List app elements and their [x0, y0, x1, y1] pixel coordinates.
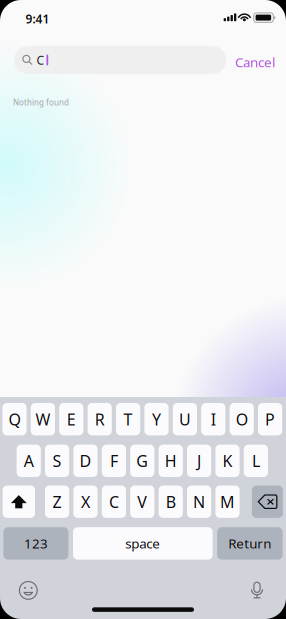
button[interactable]: I [201, 403, 225, 435]
button[interactable]: K [215, 445, 240, 477]
staticText: Nothing found [13, 97, 69, 108]
button[interactable]: C [102, 485, 126, 518]
button[interactable]: S [45, 445, 69, 477]
button[interactable]: Emoji [11, 575, 45, 605]
staticText: F [110, 450, 118, 471]
button[interactable]: Delete [252, 485, 283, 518]
button[interactable]: 123 [3, 527, 68, 560]
button[interactable]: O [230, 403, 254, 435]
button[interactable]: Z [45, 485, 69, 518]
staticText: Cancel [235, 53, 275, 71]
staticText: J [197, 450, 201, 471]
button[interactable]: J [187, 445, 211, 477]
staticText: T [124, 409, 133, 430]
staticText: O [236, 409, 248, 430]
button[interactable]: P [258, 403, 282, 435]
button[interactable]: U [173, 403, 197, 435]
staticText: C [36, 52, 44, 68]
button[interactable]: Q [2, 403, 27, 435]
button[interactable]: V [130, 485, 154, 518]
staticText: W [35, 409, 50, 430]
button[interactable]: R [88, 403, 112, 435]
staticText: V [137, 491, 147, 512]
button[interactable]: H [159, 445, 183, 477]
button[interactable]: L [244, 445, 268, 477]
staticText: X [81, 491, 90, 512]
button[interactable]: Cancel [233, 48, 277, 76]
staticText: Return [228, 534, 271, 552]
staticText: Y [152, 409, 161, 430]
button[interactable]: M [215, 485, 240, 518]
staticText: B [166, 491, 176, 512]
staticText: Z [53, 491, 62, 512]
staticText: 9:41 [25, 11, 49, 27]
button[interactable]: Y [144, 403, 169, 435]
staticText: K [222, 450, 232, 471]
button[interactable]: N [187, 485, 211, 518]
staticText: P [265, 409, 275, 430]
staticText: 123 [24, 534, 48, 552]
staticText: A [24, 450, 34, 471]
button[interactable]: Return [217, 527, 283, 560]
staticText: S [53, 450, 62, 471]
button[interactable]: A [17, 445, 41, 477]
staticText: D [79, 450, 91, 471]
button[interactable]: X [73, 485, 98, 518]
button[interactable]: W [31, 403, 55, 435]
staticText: U [179, 409, 191, 430]
button[interactable]: E [59, 403, 83, 435]
staticText: G [136, 450, 148, 471]
staticText: L [252, 450, 260, 471]
button[interactable]: space [73, 527, 213, 560]
button[interactable]: Dictate [240, 575, 274, 605]
staticText: N [193, 491, 205, 512]
button[interactable]: Shift [3, 485, 35, 518]
button[interactable]: T [116, 403, 140, 435]
button[interactable]: D [73, 445, 98, 477]
staticText: Q [8, 409, 20, 430]
button[interactable]: B [159, 485, 183, 518]
staticText: C [109, 491, 119, 512]
staticText: M [220, 491, 235, 512]
staticText: E [67, 409, 76, 430]
staticText: space [125, 534, 160, 552]
staticText: H [165, 450, 177, 471]
button[interactable]: G [130, 445, 154, 477]
button[interactable]: F [102, 445, 126, 477]
staticText: I [211, 409, 216, 430]
staticText: R [95, 409, 105, 430]
